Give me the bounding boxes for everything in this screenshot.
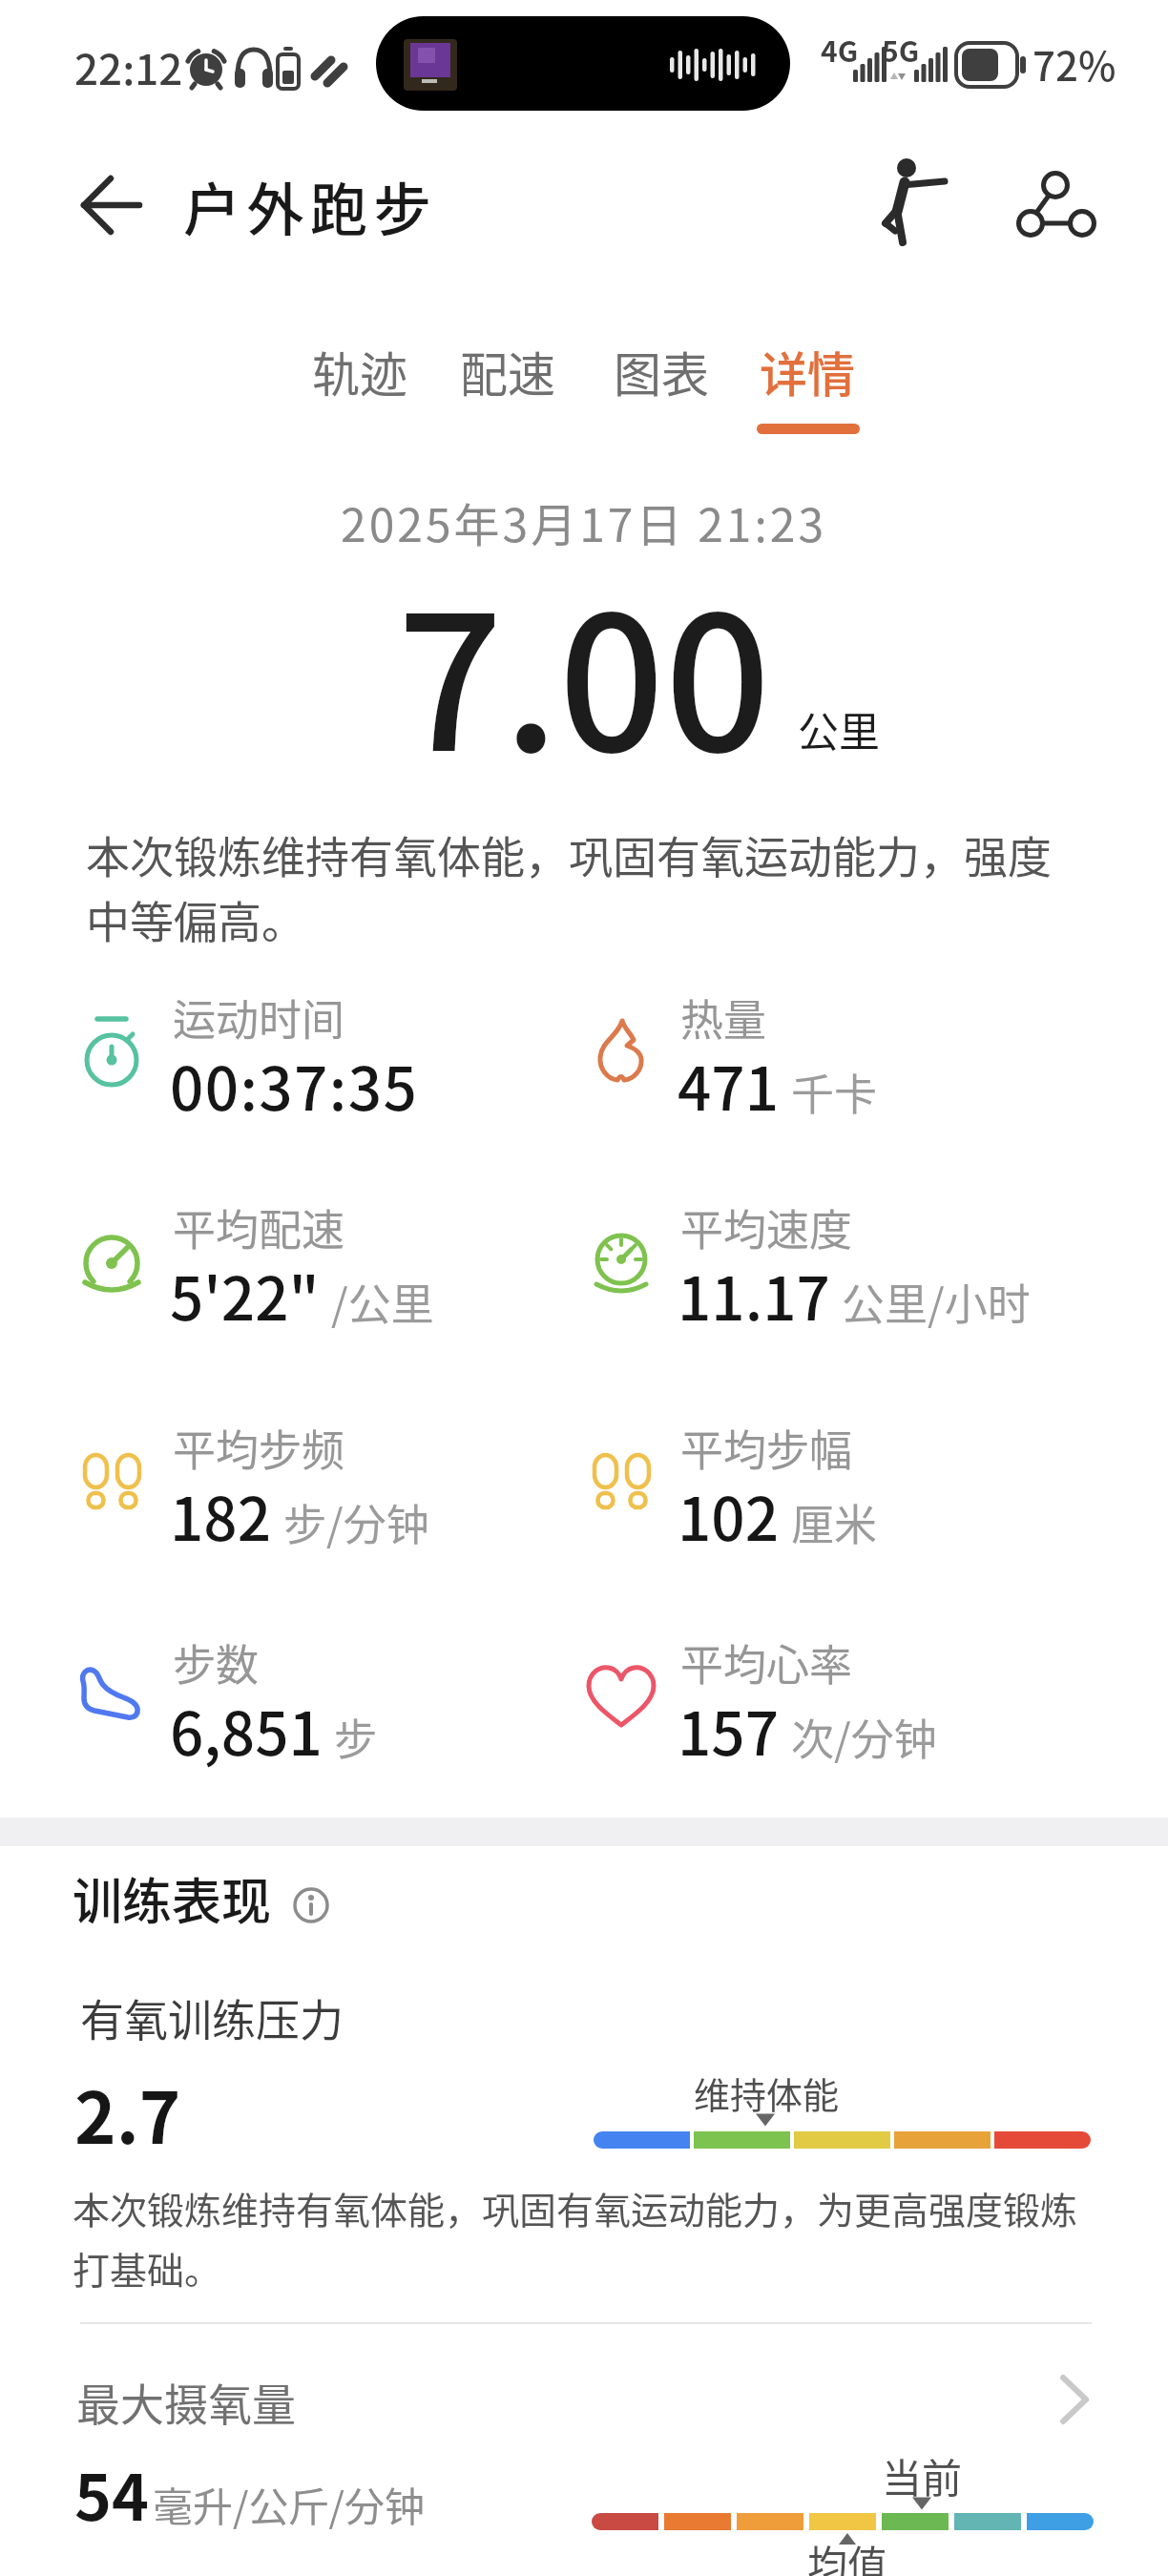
staticText: 157 [678,1687,780,1773]
button[interactable] [866,153,962,252]
staticText: 2.7 [74,2062,181,2164]
staticText: 公里 [798,699,880,758]
staticText: 千卡 [791,1061,878,1123]
staticText: 图表 [614,337,709,405]
staticText: 当前 [882,2446,963,2504]
staticText: 热量 [680,987,767,1049]
staticText: 本次锻炼维持有氧体能，巩固有氧运动能力，为更高强度锻炼 打基础。 [73,2181,1160,2295]
staticText: 步数 [173,1631,260,1693]
staticText: 22:12 [74,36,183,97]
staticText: 平均心率 [680,1631,853,1693]
staticText: 平均步幅 [680,1417,853,1479]
staticText: 户外跑步 [183,164,437,247]
staticText: 72% [1032,34,1116,93]
staticText: 步/分钟 [283,1491,429,1553]
staticText: 最大摄氧量 [76,2370,296,2434]
staticText: 厘米 [791,1491,878,1553]
staticText: 训练表现 [73,1862,272,1934]
staticText: 详情 [760,337,855,405]
staticText: 步 [334,1706,378,1768]
staticText: 轨迹 [312,337,407,405]
staticText: 公里/小时 [842,1271,1031,1333]
staticText: 次/分钟 [791,1706,937,1768]
staticText: 5'22" [170,1252,320,1338]
button[interactable]: 轨迹 [301,331,419,411]
staticText: 102 [678,1472,780,1558]
staticText: 54 [74,2447,149,2539]
staticText: 平均步频 [173,1417,345,1479]
staticText: 2025年3月17日 21:23 [341,488,827,555]
staticText: 均值 [807,2533,888,2576]
staticText: 维持体能 [694,2067,840,2119]
button[interactable] [57,2357,1111,2452]
staticText: 本次锻炼维持有氧体能，巩固有氧运动能力，强度 中等偏高。 [86,822,1155,950]
staticText: 00:37:35 [170,1042,419,1128]
button[interactable]: 图表 [602,331,720,411]
staticText: 7.00 [397,535,771,804]
staticText: 运动时间 [173,987,345,1049]
button[interactable] [63,170,158,242]
staticText: 5G [882,29,920,70]
staticText: 平均速度 [680,1196,853,1258]
staticText: 毫升/公斤/分钟 [153,2475,425,2533]
button[interactable] [288,1881,336,1929]
button[interactable]: 详情 [748,331,866,411]
button[interactable] [376,16,790,111]
staticText: 11.17 [678,1252,830,1338]
button[interactable] [1008,162,1107,244]
staticText: 平均配速 [173,1196,345,1258]
staticText: 471 [678,1042,780,1128]
staticText: 6,851 [170,1687,323,1773]
staticText: 4G [821,29,859,70]
staticText: 配速 [460,337,555,405]
staticText: 有氧训练压力 [80,1985,344,2049]
staticText: 182 [170,1472,272,1558]
button[interactable]: 配速 [448,331,567,411]
staticText: /公里 [331,1271,434,1333]
